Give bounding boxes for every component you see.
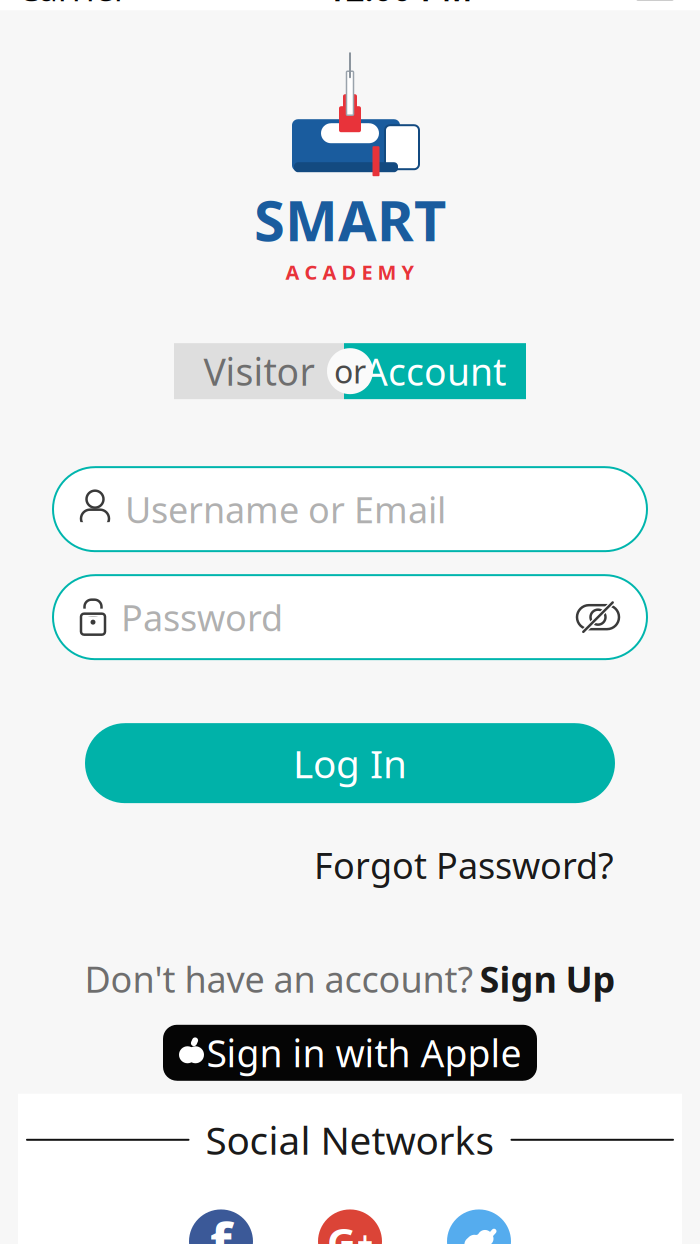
button[interactable]: Sign in with Twitter — [447, 1209, 511, 1244]
staticText: f — [210, 1204, 232, 1244]
staticText: Log In — [293, 737, 407, 789]
staticText: Don't have an account? — [84, 955, 473, 1003]
staticText: Username or Email — [125, 485, 446, 533]
staticText: SMART — [254, 182, 446, 257]
staticText: G — [327, 1215, 356, 1244]
button[interactable]: or — [327, 348, 373, 394]
staticText: Visitor — [203, 346, 314, 396]
staticText: or — [334, 350, 366, 392]
staticText: Sign in with Apple — [206, 1028, 521, 1078]
staticText: + — [357, 1223, 373, 1244]
button[interactable]: Don't have an account? — [84, 955, 615, 1003]
button[interactable]: Visitor — [174, 343, 344, 399]
button[interactable]: Sign in with Facebook — [189, 1209, 253, 1244]
staticText: A C A D E M Y — [285, 259, 414, 285]
staticText: Sign Up — [479, 955, 615, 1003]
button[interactable]: Forgot Password? — [314, 841, 614, 889]
staticText: 12:00 PM — [326, 0, 472, 10]
staticText: Social Networks — [205, 1114, 494, 1165]
button[interactable]: Sign in with Apple — [163, 1025, 537, 1081]
button[interactable]: Account — [344, 343, 526, 399]
staticText: Account — [364, 346, 506, 396]
button[interactable]: Sign in with Google Plus — [318, 1209, 382, 1244]
button[interactable]: Log In — [85, 723, 615, 803]
staticText: Password — [121, 593, 283, 641]
staticText: Carrier — [18, 0, 128, 10]
button[interactable]: Show password — [575, 600, 621, 634]
staticText: Forgot Password? — [314, 841, 614, 889]
